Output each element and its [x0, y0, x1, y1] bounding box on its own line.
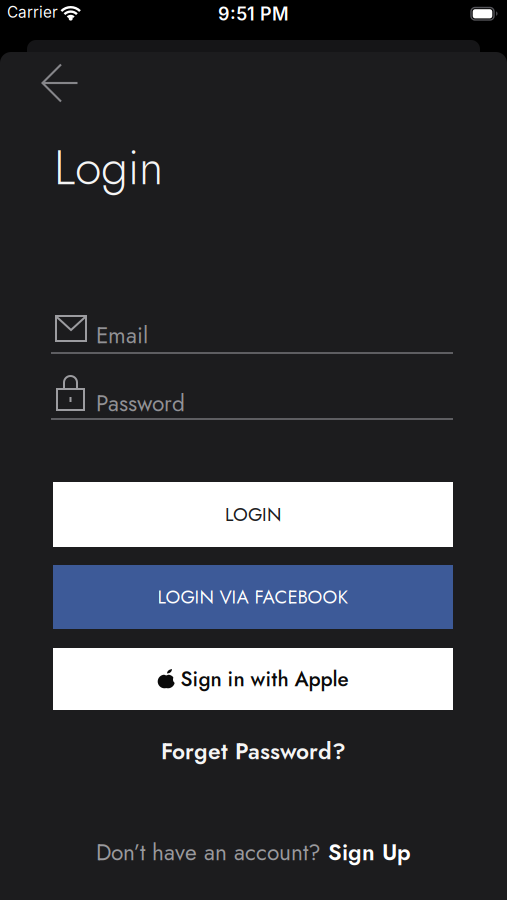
button[interactable]: Password: [51, 370, 453, 420]
button[interactable]: LOGIN VIA FACEBOOK: [53, 565, 453, 629]
button[interactable]: LOGIN: [53, 482, 453, 547]
button[interactable]: Sign Up: [328, 836, 411, 869]
staticText: Password: [96, 387, 185, 420]
button[interactable]: Email: [51, 309, 453, 354]
button[interactable]: Back: [38, 61, 82, 105]
staticText: LOGIN VIA FACEBOOK: [157, 583, 348, 610]
staticText: Don’t have an account?: [96, 836, 321, 869]
staticText: Forget Password?: [161, 735, 346, 768]
staticText: Carrier: [7, 3, 58, 22]
staticText: LOGIN: [225, 501, 281, 528]
button[interactable]: Sign in with Apple: [53, 648, 453, 710]
staticText: Sign Up: [328, 836, 411, 869]
staticText: 9:51 PM: [218, 3, 289, 25]
staticText: Login: [54, 133, 163, 202]
staticText: Email: [96, 319, 148, 352]
staticText: Sign in with Apple: [180, 664, 348, 694]
button[interactable]: Forget Password?: [161, 735, 346, 768]
